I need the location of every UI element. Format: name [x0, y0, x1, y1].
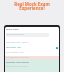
staticText: Bilingual Hindi / English — [6, 65, 29, 68]
staticText: Real Mock Exam Experience! — [0, 1, 64, 12]
staticText: Mock Tests — [6, 28, 19, 31]
staticText: SSC CGL Tier 1 Test — [6, 51, 24, 54]
staticText: Test Series Live — [6, 46, 21, 49]
staticText: 100 Questions | 60 Mins — [6, 56, 29, 59]
staticText: Free Mock Test - Paper 1 — [6, 41, 29, 44]
staticText: All India Test Series — [6, 33, 25, 36]
button[interactable]: Test Series Live — [6, 46, 58, 49]
staticText: Previous Year Papers — [6, 61, 29, 64]
other: Start test — [56, 47, 58, 49]
